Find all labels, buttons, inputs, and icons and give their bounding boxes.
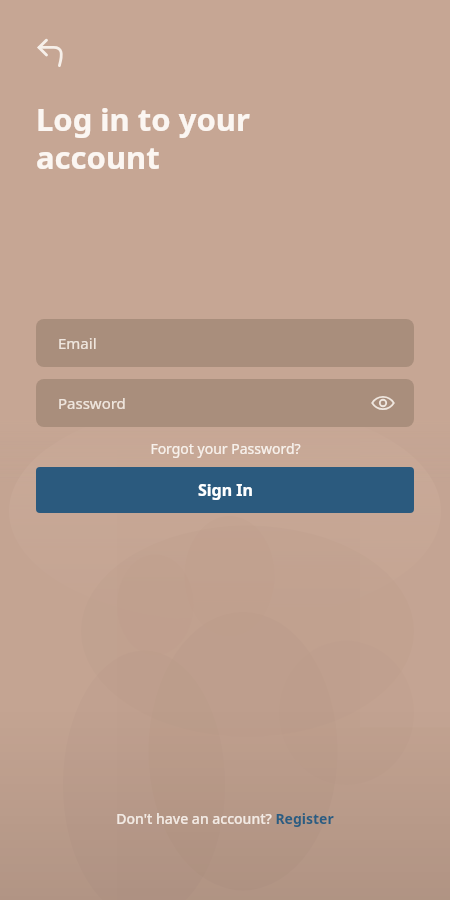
button[interactable]: Don't have an account? Register [104, 805, 346, 832]
staticText: Password [58, 393, 126, 413]
button[interactable]: Sign In [36, 467, 414, 513]
button[interactable]: Back [28, 30, 74, 76]
staticText: Email [58, 333, 97, 353]
staticText: Don't have an account? Register [116, 809, 334, 828]
button[interactable]: Password [36, 379, 414, 427]
button[interactable]: Forgot your Password? [0, 439, 450, 458]
staticText: Sign In [198, 479, 253, 501]
staticText: Log in to your account [36, 98, 250, 178]
button[interactable]: Email [36, 319, 414, 367]
staticText: Forgot your Password? [150, 439, 301, 458]
button[interactable]: Show password [366, 386, 400, 420]
